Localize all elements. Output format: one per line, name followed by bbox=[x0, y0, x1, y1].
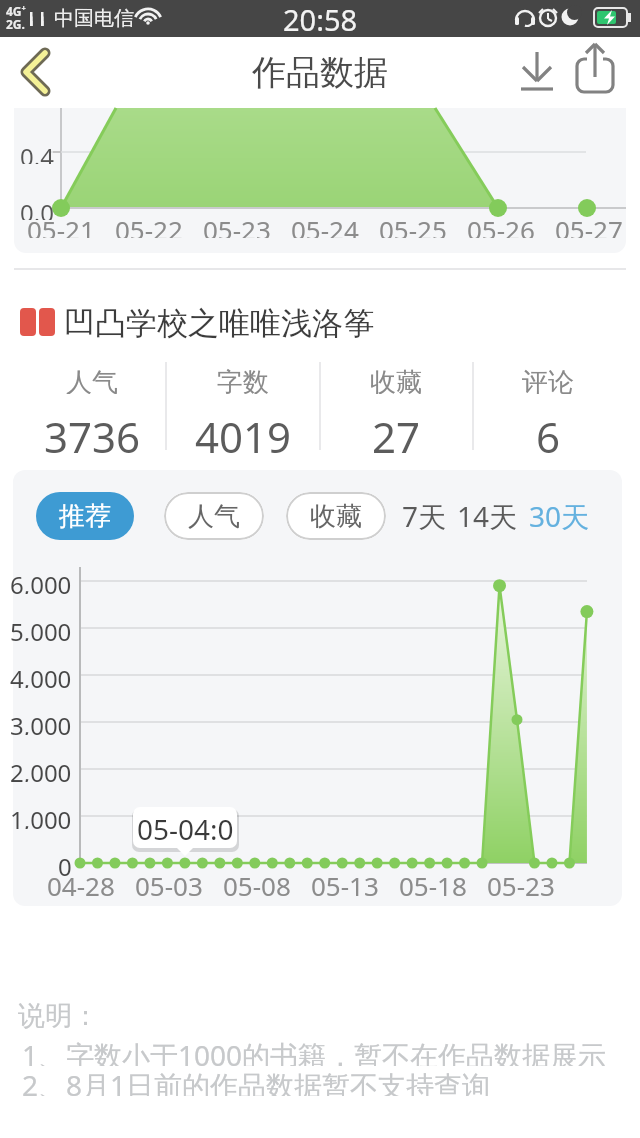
staticText: 中国电信 bbox=[54, 6, 134, 31]
staticText: 2、8月1日前的作品数据暂不支持查询 bbox=[22, 1066, 491, 1096]
staticText: 05-08 bbox=[223, 868, 291, 896]
staticText: 7天 bbox=[402, 497, 447, 535]
staticText: 作品数据 bbox=[252, 51, 388, 94]
staticText: 05-23 bbox=[487, 868, 555, 896]
staticText: 人气 bbox=[66, 366, 118, 394]
button[interactable]: 7天 bbox=[398, 496, 450, 536]
staticText: 05-04:0 bbox=[137, 810, 234, 846]
staticText: 05-25 bbox=[379, 212, 447, 238]
staticText: 05-03 bbox=[135, 868, 203, 896]
staticText: 推荐 bbox=[59, 500, 111, 533]
staticText: 字数 bbox=[217, 366, 269, 394]
staticText: 5,000 bbox=[10, 615, 72, 641]
staticText: 1,000 bbox=[10, 803, 72, 829]
staticText: 0.4 bbox=[20, 140, 54, 164]
staticText: 4,000 bbox=[10, 662, 72, 688]
staticText: 说明： bbox=[18, 999, 99, 1029]
staticText: 评论 bbox=[522, 366, 574, 394]
staticText: 收藏 bbox=[310, 500, 362, 533]
staticText: 人气 bbox=[188, 500, 240, 533]
staticText: 05-23 bbox=[203, 212, 271, 238]
staticText: 05-22 bbox=[115, 212, 183, 238]
staticText: 2,000 bbox=[10, 756, 72, 782]
button[interactable]: 收藏 bbox=[286, 492, 386, 540]
button[interactable] bbox=[568, 46, 622, 98]
staticText: 0 bbox=[58, 850, 72, 876]
staticText: 4G⁺ bbox=[6, 3, 26, 17]
button[interactable] bbox=[8, 44, 64, 100]
staticText: 05-27 bbox=[555, 212, 623, 238]
staticText: 6,000 bbox=[10, 568, 72, 594]
staticText: 凹凸学校之唯唯浅洛筝 bbox=[64, 304, 374, 342]
staticText: 14天 bbox=[457, 497, 518, 535]
staticText: 收藏 bbox=[370, 366, 422, 394]
staticText: 20:58 bbox=[283, 0, 358, 37]
staticText: 27 bbox=[372, 408, 421, 454]
staticText: 4019 bbox=[195, 408, 292, 454]
staticText: 04-28 bbox=[47, 868, 115, 896]
staticText: 30天 bbox=[529, 497, 590, 535]
staticText: 05-21 bbox=[27, 212, 95, 238]
staticText: 05-26 bbox=[467, 212, 535, 238]
staticText: 1、字数小于1000的书籍，暂不在作品数据展示 bbox=[22, 1036, 607, 1066]
staticText: 0.0 bbox=[20, 196, 54, 220]
button[interactable]: 14天 bbox=[456, 496, 518, 536]
button[interactable]: 人气 bbox=[164, 492, 264, 540]
button[interactable] bbox=[512, 46, 562, 98]
button[interactable]: 推荐 bbox=[36, 492, 134, 540]
staticText: 05-18 bbox=[399, 868, 467, 896]
staticText: 2G. bbox=[6, 16, 25, 30]
staticText: 3,000 bbox=[10, 709, 72, 735]
button[interactable]: 30天 bbox=[528, 496, 590, 536]
staticText: 6 bbox=[536, 408, 561, 454]
staticText: 05-13 bbox=[311, 868, 379, 896]
staticText: 05-24 bbox=[291, 212, 359, 238]
staticText: 3736 bbox=[44, 408, 141, 454]
